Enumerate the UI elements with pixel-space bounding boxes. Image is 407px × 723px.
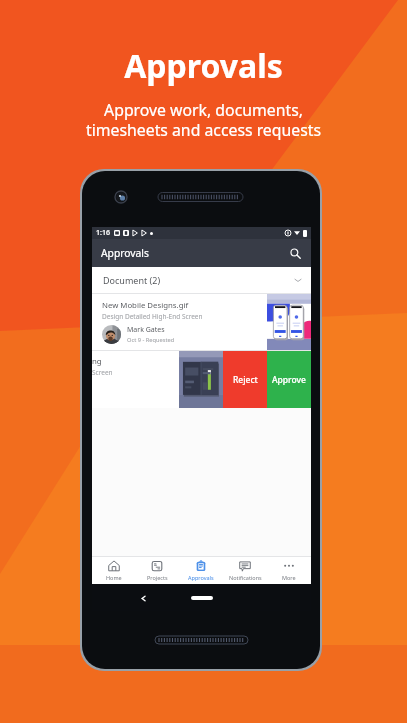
button[interactable]: Home <box>185 591 219 605</box>
staticText: ng <box>92 356 102 367</box>
staticText: Home <box>106 574 122 581</box>
button[interactable]: Document (2) <box>92 267 311 293</box>
staticText: Notifications <box>229 574 262 581</box>
staticText: Oct 9 - Requested <box>127 336 175 344</box>
button[interactable]: Approvals <box>179 557 223 584</box>
button[interactable]: Projects <box>135 557 179 584</box>
button[interactable]: ng <box>92 351 179 408</box>
staticText: Projects <box>147 574 168 581</box>
staticText: 1:16 <box>96 228 110 238</box>
button[interactable]: Notifications <box>223 557 267 584</box>
button[interactable]: Back <box>136 591 150 605</box>
button[interactable]: New Mobile Designs.gif <box>92 294 311 350</box>
staticText: Document (2) <box>103 274 161 286</box>
staticText: Approvals <box>124 44 283 88</box>
button[interactable]: Search <box>286 244 304 262</box>
staticText: Approve work, documents, timesheets and … <box>86 99 321 140</box>
staticText: Approve <box>272 374 306 386</box>
staticText: New Mobile Designs.gif <box>102 300 189 311</box>
button[interactable]: Home <box>92 557 135 584</box>
staticText: Screen <box>92 368 113 377</box>
staticText: Approvals <box>101 246 149 260</box>
staticText: Approvals <box>188 574 214 581</box>
button[interactable]: More <box>267 557 311 584</box>
staticText: Mark Gates <box>127 325 165 335</box>
button[interactable]: Reject <box>223 351 267 408</box>
staticText: Reject <box>233 374 258 386</box>
button[interactable]: Approve <box>267 351 311 408</box>
staticText: Design Detailed High-End Screen <box>102 312 203 321</box>
staticText: More <box>282 574 296 581</box>
